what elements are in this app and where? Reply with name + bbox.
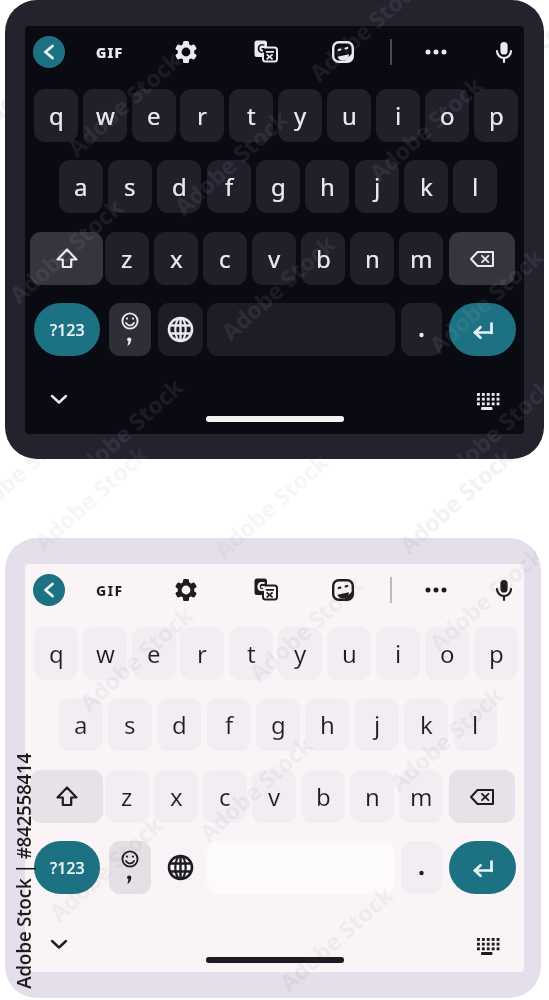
button[interactable]: v [252,770,296,823]
button[interactable] [30,232,103,285]
button[interactable]: z [105,770,149,823]
staticText: Adobe Stock [207,446,334,564]
button[interactable] [401,841,442,894]
button[interactable]: w [83,627,127,680]
button[interactable]: r [180,627,224,680]
staticText: g [271,708,286,741]
button[interactable]: m [399,232,443,285]
button[interactable] [449,841,516,894]
button[interactable] [109,303,151,356]
button[interactable]: x [154,770,198,823]
button[interactable]: d [157,160,201,213]
staticText: f [225,708,234,741]
button[interactable]: GIF [90,38,130,66]
button[interactable]: h [305,698,349,751]
button[interactable] [207,303,395,356]
button[interactable]: G [253,39,279,65]
button[interactable]: i [376,89,420,142]
staticText: s [124,708,136,741]
button[interactable]: t [229,627,273,680]
button[interactable] [449,303,516,356]
button[interactable]: d [157,698,201,751]
button[interactable]: l [453,698,497,751]
button[interactable] [330,577,356,603]
button[interactable] [33,36,65,68]
button[interactable] [158,841,203,894]
button[interactable]: w [83,89,127,142]
button[interactable] [474,932,502,960]
button[interactable]: x [154,232,198,285]
button[interactable]: u [327,89,371,142]
button[interactable] [30,770,103,823]
button[interactable]: ?123 [34,303,100,356]
button[interactable]: t [229,89,273,142]
button[interactable] [172,38,200,66]
button[interactable]: n [350,232,394,285]
button[interactable]: y [278,89,322,142]
button[interactable] [422,576,450,604]
button[interactable] [491,39,517,65]
button[interactable]: o [425,89,469,142]
button[interactable]: z [105,232,149,285]
button[interactable]: s [108,698,152,751]
button[interactable]: c [203,770,247,823]
button[interactable]: c [203,232,247,285]
button[interactable]: a [59,160,103,213]
button[interactable]: i [376,627,420,680]
button[interactable] [449,232,515,285]
button[interactable] [33,574,65,606]
button[interactable]: ?123 [34,841,100,894]
button[interactable] [172,576,200,604]
button[interactable] [491,577,517,603]
button[interactable]: p [474,89,518,142]
button[interactable]: n [350,770,394,823]
button[interactable]: G [253,577,279,603]
button[interactable]: r [180,89,224,142]
button[interactable]: g [256,160,300,213]
button[interactable] [45,930,73,958]
button[interactable]: f [207,698,251,751]
button[interactable] [330,39,356,65]
button[interactable]: e [132,627,176,680]
staticText: t [247,637,256,670]
button[interactable] [422,38,450,66]
button[interactable]: g [256,698,300,751]
staticText: r [197,637,207,670]
button[interactable]: j [355,160,399,213]
button[interactable] [45,385,73,413]
button[interactable]: p [474,627,518,680]
button[interactable]: q [34,89,78,142]
button[interactable]: GIF [90,576,130,604]
button[interactable]: u [327,627,371,680]
staticText: x [170,242,183,275]
button[interactable] [474,387,502,415]
button[interactable] [158,303,203,356]
button[interactable]: j [355,698,399,751]
staticText: o [440,99,455,132]
button[interactable]: k [404,160,448,213]
staticText: p [489,99,504,132]
button[interactable]: s [108,160,152,213]
button[interactable]: l [453,160,497,213]
staticText: GIF [96,581,124,600]
button[interactable] [401,303,442,356]
button[interactable]: y [278,627,322,680]
staticText: i [395,637,402,670]
button[interactable] [449,770,515,823]
button[interactable]: m [399,770,443,823]
button[interactable]: a [59,698,103,751]
staticText: ?123 [50,319,85,341]
button[interactable]: h [305,160,349,213]
button[interactable]: b [301,770,345,823]
button[interactable]: k [404,698,448,751]
button[interactable]: o [425,627,469,680]
staticText: e [147,637,161,670]
staticText: Adobe Stock [432,371,544,459]
button[interactable]: e [132,89,176,142]
button[interactable]: q [34,627,78,680]
button[interactable]: b [301,232,345,285]
button[interactable] [109,841,151,894]
button[interactable]: v [252,232,296,285]
button[interactable]: f [207,160,251,213]
